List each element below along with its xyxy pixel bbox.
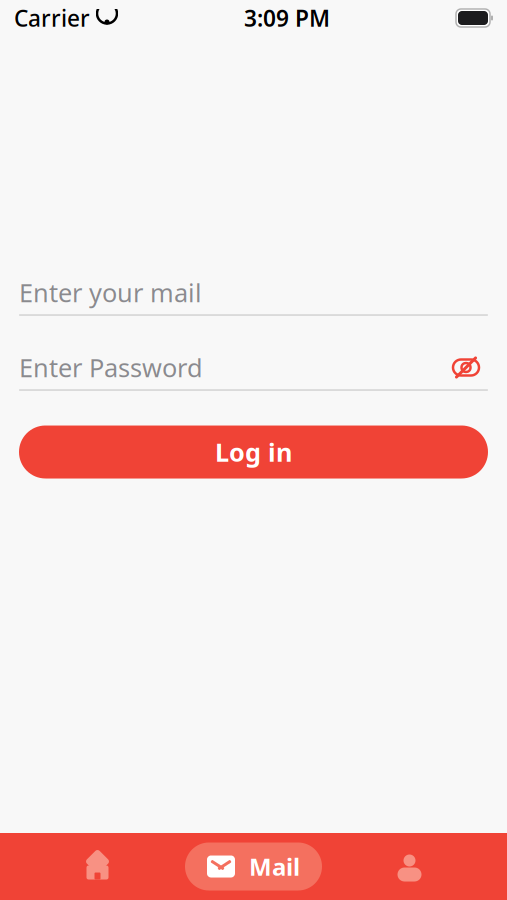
button[interactable]: Profile — [322, 833, 497, 900]
button[interactable]: Home — [10, 833, 185, 900]
staticText: Log in — [215, 435, 292, 469]
staticText: Carrier — [14, 3, 90, 33]
staticText: Enter your mail — [19, 276, 202, 309]
staticText: 3:09 PM — [244, 3, 330, 33]
staticText: Mail — [249, 851, 300, 882]
button[interactable]: Mail — [185, 842, 322, 890]
button[interactable]: Log in — [19, 425, 488, 478]
button[interactable]: Show password — [444, 345, 488, 389]
staticText: Enter Password — [19, 351, 203, 384]
